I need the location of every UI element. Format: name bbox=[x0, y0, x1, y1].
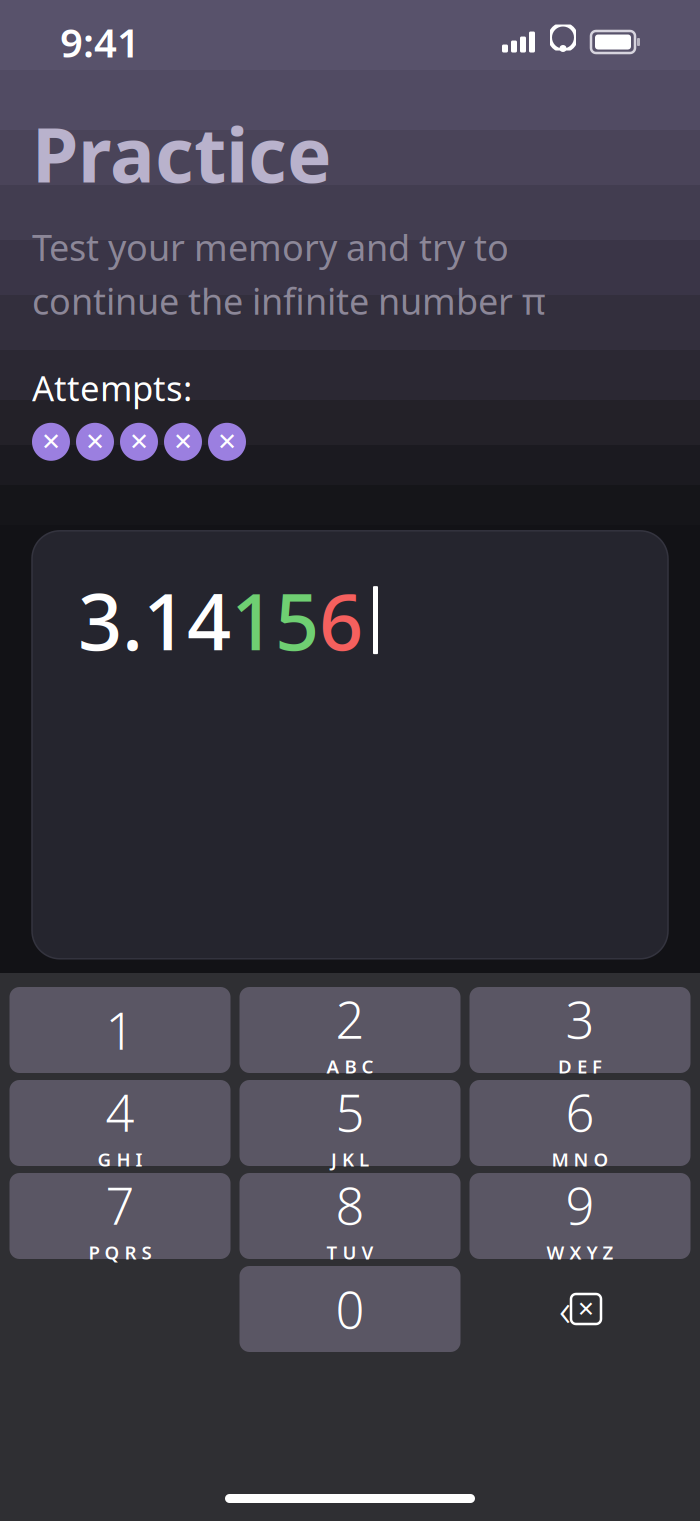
staticText: ✕ bbox=[217, 428, 237, 455]
button[interactable]: 7 bbox=[9, 1173, 230, 1259]
staticText: 9:41 bbox=[60, 15, 140, 68]
button[interactable]: 4 bbox=[9, 1080, 230, 1166]
button[interactable]: 5 bbox=[239, 1080, 460, 1166]
staticText: 8 bbox=[335, 1171, 364, 1239]
staticText: ‹ bbox=[559, 1279, 571, 1339]
staticText: 15 bbox=[231, 569, 319, 671]
staticText: 6 bbox=[319, 569, 363, 671]
staticText: 5 bbox=[335, 1078, 364, 1146]
button[interactable]: 2 bbox=[239, 987, 460, 1073]
staticText: A B C bbox=[326, 1054, 373, 1078]
staticText: 6 bbox=[565, 1078, 594, 1146]
staticText: ✕ bbox=[577, 1297, 595, 1321]
button[interactable]: 9 bbox=[469, 1173, 690, 1259]
staticText: ✕ bbox=[85, 428, 105, 455]
button[interactable]: 3 bbox=[469, 987, 690, 1073]
staticText: D E F bbox=[558, 1054, 602, 1078]
staticText: ✕ bbox=[129, 428, 149, 455]
staticText: J K L bbox=[331, 1147, 369, 1171]
button[interactable]: 1 bbox=[9, 987, 230, 1073]
staticText: 9 bbox=[565, 1171, 594, 1239]
staticText: W X Y Z bbox=[546, 1240, 613, 1264]
staticText: Practice bbox=[32, 104, 332, 203]
staticText: 7 bbox=[105, 1171, 134, 1239]
staticText: 4 bbox=[105, 1078, 134, 1146]
button[interactable]: 0 bbox=[239, 1266, 460, 1352]
staticText: 3.14 bbox=[78, 569, 231, 671]
button[interactable]: 6 bbox=[469, 1080, 690, 1166]
staticText: T U V bbox=[326, 1240, 373, 1264]
staticText: ✕ bbox=[41, 428, 61, 455]
staticText: continue the infinite number π bbox=[32, 277, 546, 325]
staticText: Test your memory and try to bbox=[32, 223, 509, 271]
staticText: Attempts: bbox=[32, 365, 192, 411]
staticText: 0 bbox=[335, 1275, 364, 1343]
staticText: G H I bbox=[97, 1147, 142, 1171]
staticText: 1 bbox=[105, 996, 134, 1064]
staticText: P Q R S bbox=[88, 1240, 151, 1264]
staticText: 3 bbox=[565, 985, 594, 1053]
staticText: 2 bbox=[335, 985, 364, 1053]
staticText: ✕ bbox=[173, 428, 193, 455]
button[interactable]: 8 bbox=[239, 1173, 460, 1259]
staticText: M N O bbox=[551, 1147, 608, 1171]
button[interactable]: Delete bbox=[469, 1266, 690, 1352]
